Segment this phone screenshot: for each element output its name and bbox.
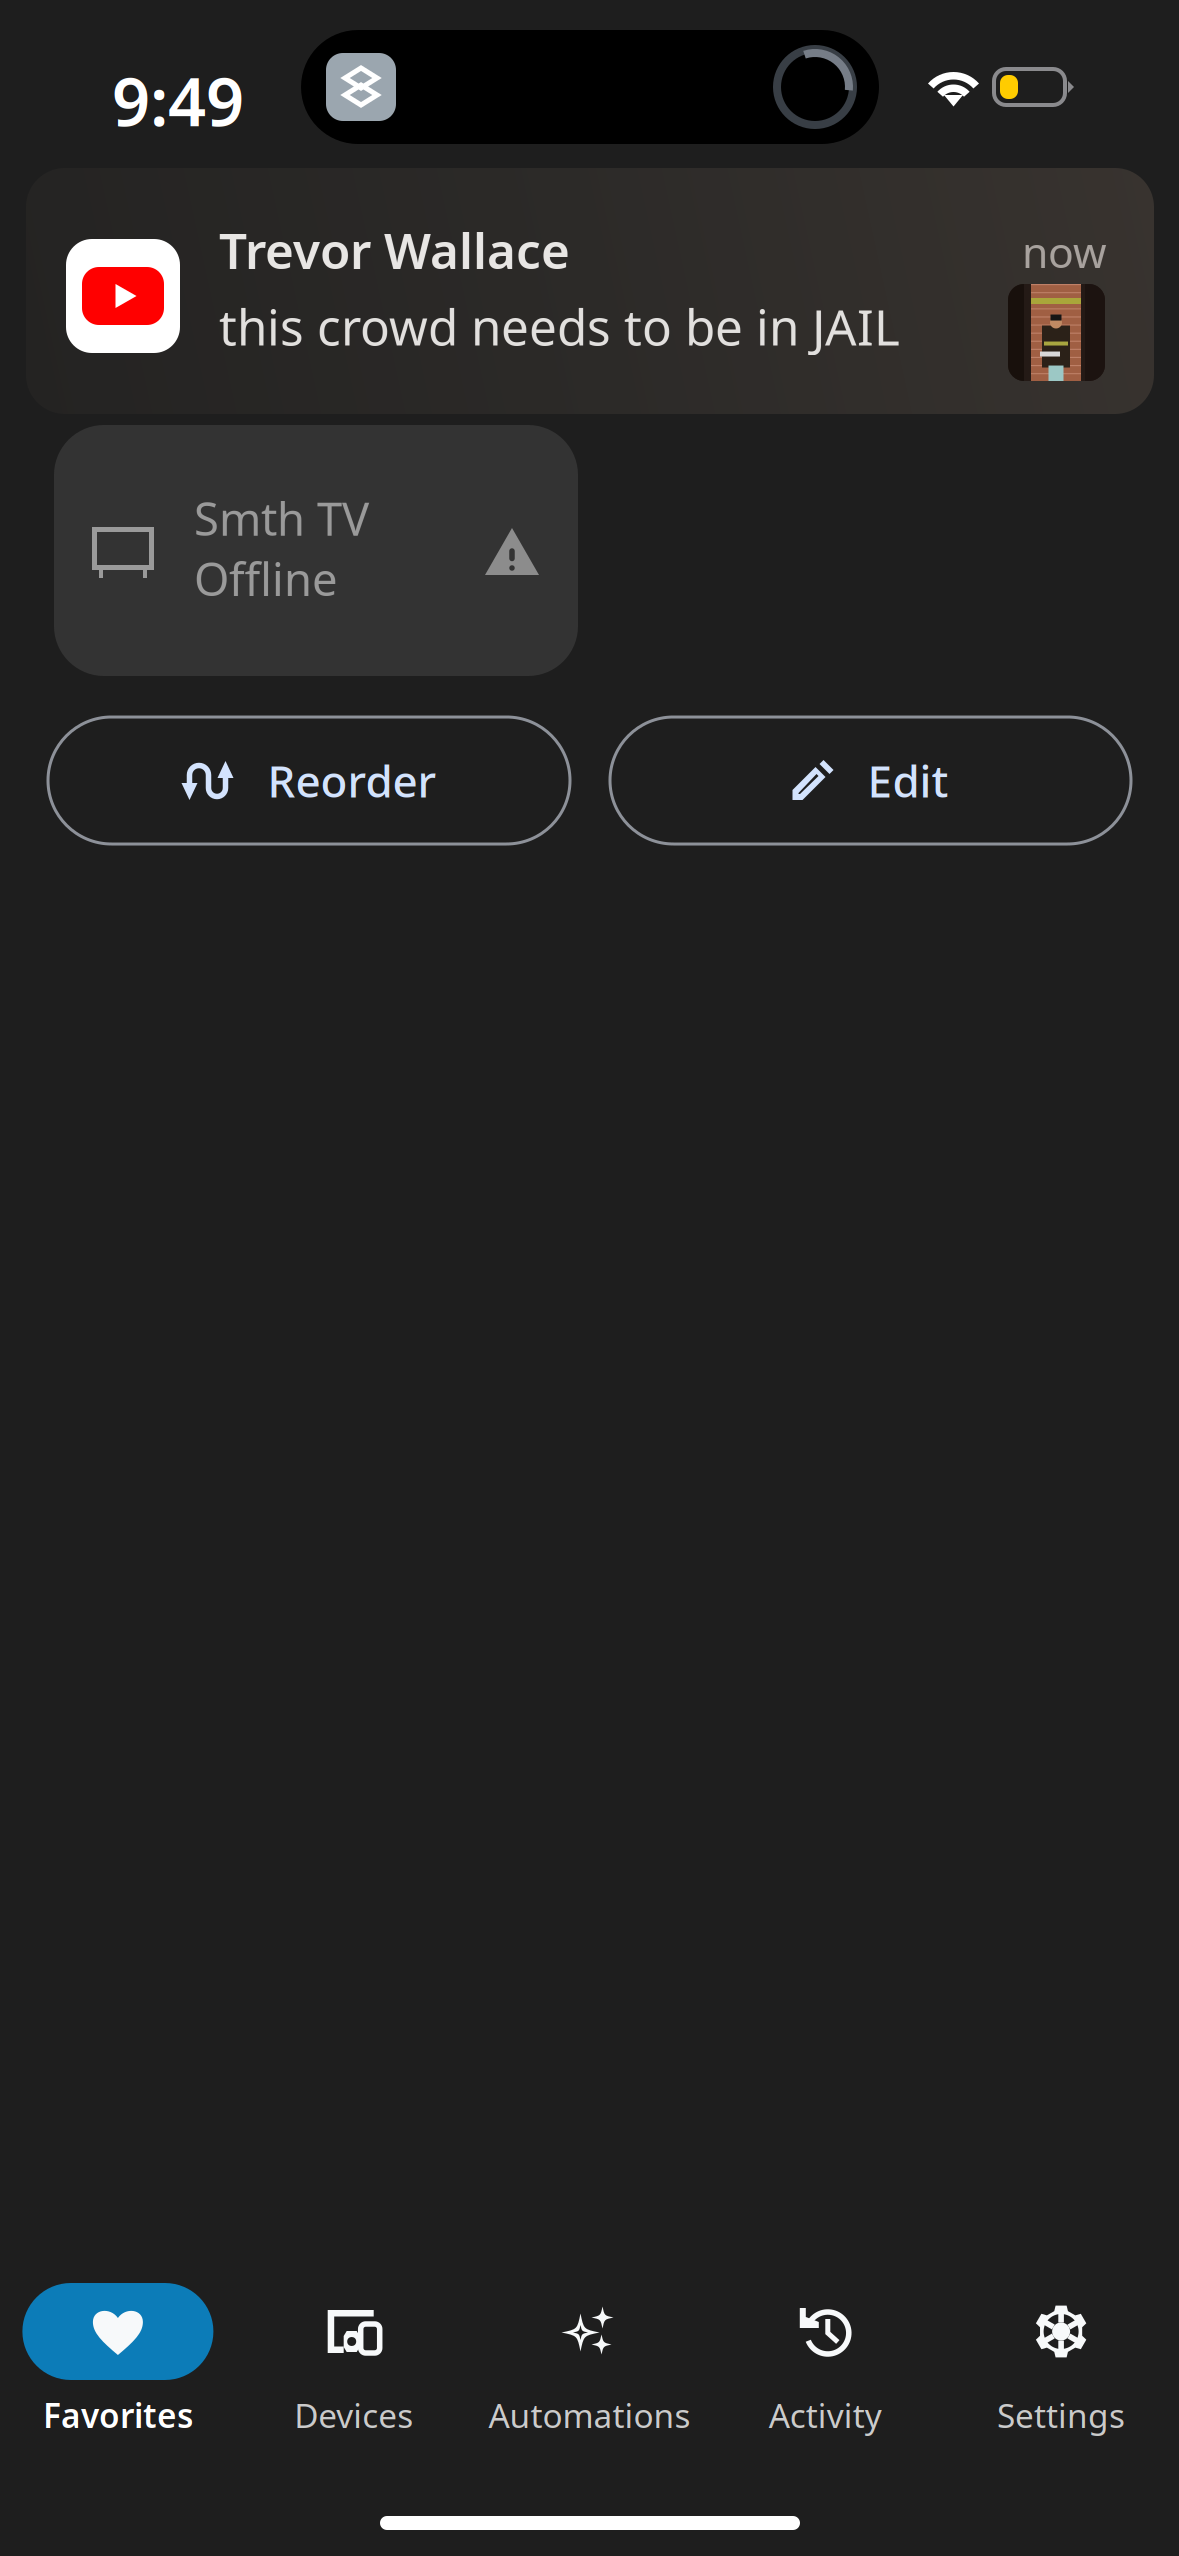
staticText: Activity bbox=[769, 2393, 882, 2437]
button[interactable]: Activity bbox=[707, 2283, 943, 2436]
button[interactable]: Trevor Wallace bbox=[26, 168, 1154, 414]
button[interactable]: Devices bbox=[236, 2283, 472, 2436]
staticText: Reorder bbox=[267, 751, 436, 810]
button[interactable]: Reorder bbox=[48, 717, 570, 844]
button[interactable]: Settings bbox=[943, 2283, 1179, 2436]
staticText: Smth TV bbox=[194, 488, 369, 548]
staticText: 9:49 bbox=[112, 56, 244, 144]
staticText: Devices bbox=[294, 2393, 413, 2437]
staticText: Favorites bbox=[43, 2393, 193, 2437]
staticText: Trevor Wallace bbox=[219, 217, 570, 282]
staticText: now bbox=[1022, 223, 1107, 280]
button[interactable]: Edit bbox=[610, 717, 1131, 844]
staticText: Offline bbox=[194, 548, 338, 608]
button[interactable]: Smth TV bbox=[54, 425, 578, 676]
staticText: Edit bbox=[867, 751, 948, 810]
staticText: Settings bbox=[997, 2393, 1125, 2437]
staticText: Automations bbox=[488, 2393, 690, 2437]
button[interactable]: Favorites bbox=[0, 2283, 236, 2436]
button[interactable]: Automations bbox=[472, 2283, 707, 2436]
staticText: this crowd needs to be in JAIL bbox=[219, 293, 900, 359]
